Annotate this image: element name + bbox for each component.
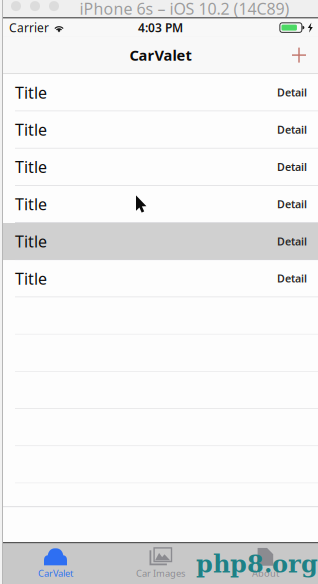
button[interactable]: Title [3,223,318,260]
staticText: Detail [277,123,307,137]
staticText: Title [15,82,47,103]
staticText: php8.org [196,550,318,578]
staticText: Title [15,268,47,289]
staticText: Detail [277,234,307,248]
staticText: CarValet [38,567,73,579]
staticText: Detail [277,271,307,286]
staticText: 4:03 PM [138,20,183,35]
staticText: Detail [277,160,307,174]
button[interactable]: Title [3,149,318,186]
staticText: Title [15,193,47,215]
staticText: Detail [277,85,307,100]
button[interactable]: Title [3,260,318,297]
button[interactable]: Title [3,186,318,223]
staticText: Carrier [9,20,49,35]
staticText: Detail [277,197,307,211]
staticText: Car Images [136,567,185,579]
staticText: CarValet [129,45,191,65]
button[interactable]: Car Images [108,543,213,584]
button[interactable]: Title [3,111,318,149]
button[interactable]: About [213,543,318,584]
button[interactable]: Title [3,74,318,111]
staticText: Title [15,119,47,140]
button[interactable]: Add car [287,43,311,67]
staticText: About [252,567,279,579]
staticText: Title [15,156,47,177]
button[interactable]: CarValet [3,543,108,584]
staticText: Title [15,231,47,252]
staticText: iPhone 6s – iOS 10.2 (14C89) [79,0,289,19]
